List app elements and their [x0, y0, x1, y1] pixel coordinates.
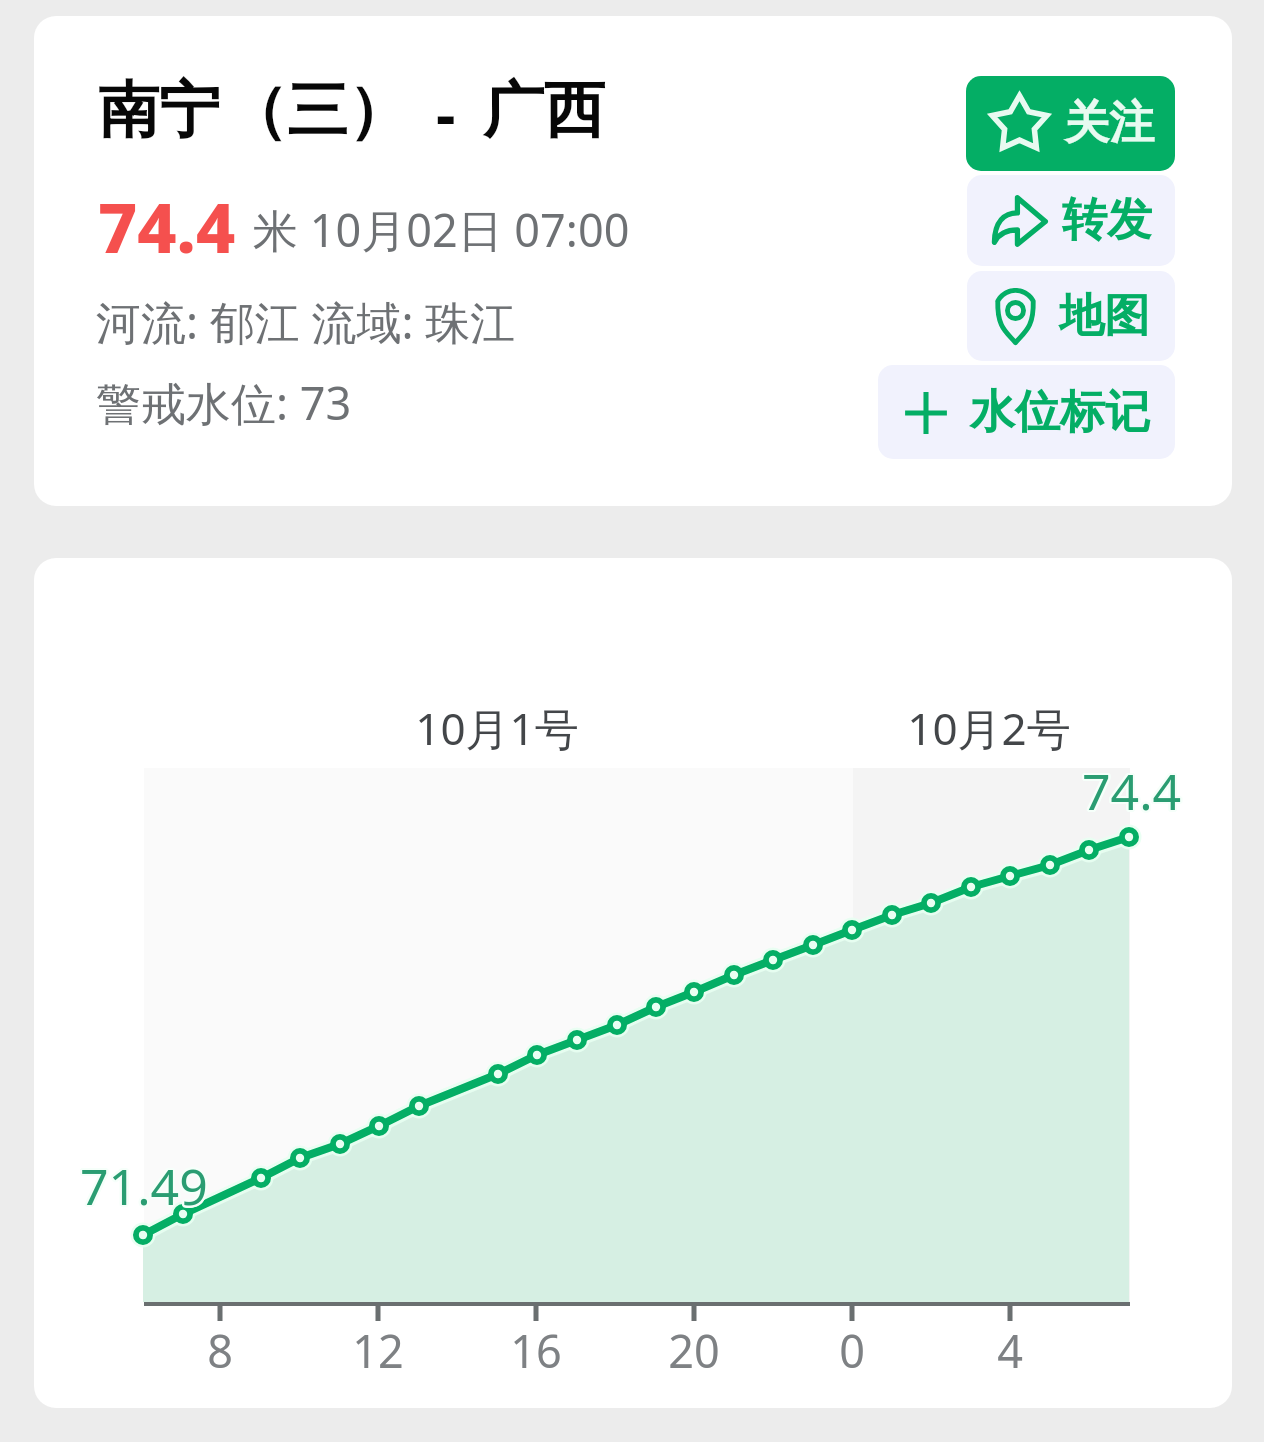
staticText: 16 — [396, 1320, 676, 1381]
staticText: 74.4 — [1082, 758, 1182, 826]
staticText: 4 — [870, 1320, 1150, 1381]
staticText: 南宁 — [98, 72, 220, 149]
staticText: 74.4 — [1082, 755, 1182, 823]
staticText: - — [436, 72, 456, 155]
staticText: 警戒水位: 73 — [96, 372, 352, 433]
staticText: 71.49 — [82, 1151, 210, 1219]
staticText: 74.4 — [1082, 759, 1182, 827]
staticText: 74.4 — [1084, 758, 1184, 826]
staticText: 71.49 — [81, 1151, 209, 1219]
staticText: 71.49 — [81, 1152, 209, 1220]
staticText: 10月2号 — [849, 698, 1129, 758]
staticText: 12 — [238, 1320, 518, 1381]
staticText: 转发 — [1062, 192, 1152, 249]
staticText: 74.4 — [1083, 759, 1183, 827]
staticText: 71.49 — [78, 1151, 206, 1219]
staticText: 74.4 — [1084, 756, 1184, 824]
staticText: 74.4 — [1081, 756, 1181, 824]
staticText: 关注 — [1064, 95, 1154, 152]
staticText: 74.4 — [1082, 757, 1182, 825]
staticText: 水位标记 — [970, 384, 1150, 441]
staticText: 8 — [80, 1320, 360, 1381]
staticText: 10月1号 — [357, 698, 637, 758]
staticText: 71.49 — [80, 1154, 208, 1222]
button[interactable]: Share — [967, 175, 1175, 266]
staticText: 74.4 — [1083, 757, 1183, 825]
staticText: 71.49 — [82, 1153, 210, 1221]
staticText: 71.49 — [80, 1153, 208, 1221]
staticText: 71.49 — [78, 1153, 206, 1221]
staticText: 71.49 — [82, 1152, 210, 1220]
staticText: 71.49 — [80, 1152, 208, 1220]
staticText: 20 — [554, 1320, 834, 1381]
staticText: 71.49 — [80, 1150, 208, 1218]
staticText: 74.4 — [1083, 756, 1183, 824]
staticText: 71.49 — [80, 1151, 208, 1219]
staticText: 河流: 郁江 流域: 珠江 — [96, 291, 516, 352]
staticText: 71.49 — [79, 1152, 207, 1220]
staticText: 74.4 — [98, 180, 236, 273]
staticText: 米 10月02日 07:00 — [253, 199, 630, 260]
staticText: 71.49 — [81, 1150, 209, 1218]
staticText: 74.4 — [1081, 759, 1181, 827]
staticText: （三） — [226, 72, 409, 149]
staticText: 71.49 — [81, 1153, 209, 1221]
staticText: 74.4 — [1081, 757, 1181, 825]
staticText: 74.4 — [1081, 758, 1181, 826]
staticText: 71.49 — [81, 1154, 209, 1222]
staticText: 74.4 — [1080, 756, 1180, 824]
staticText: 74.4 — [1082, 756, 1182, 824]
button[interactable]: Add water mark — [878, 365, 1175, 459]
staticText: 71.49 — [79, 1154, 207, 1222]
staticText: 74.4 — [1081, 755, 1181, 823]
staticText: 74.4 — [1080, 757, 1180, 825]
staticText: 74.4 — [1084, 757, 1184, 825]
staticText: 74.4 — [1083, 755, 1183, 823]
button[interactable]: Map — [967, 271, 1175, 361]
button[interactable]: Follow — [966, 76, 1175, 171]
staticText: 74.4 — [1080, 758, 1180, 826]
staticText: 71.49 — [79, 1150, 207, 1218]
staticText: 广西 — [483, 72, 605, 149]
staticText: 0 — [712, 1320, 992, 1381]
staticText: 74.4 — [1083, 758, 1183, 826]
staticText: 71.49 — [78, 1152, 206, 1220]
staticText: 71.49 — [79, 1153, 207, 1221]
staticText: 地图 — [1059, 288, 1149, 345]
staticText: 71.49 — [79, 1151, 207, 1219]
